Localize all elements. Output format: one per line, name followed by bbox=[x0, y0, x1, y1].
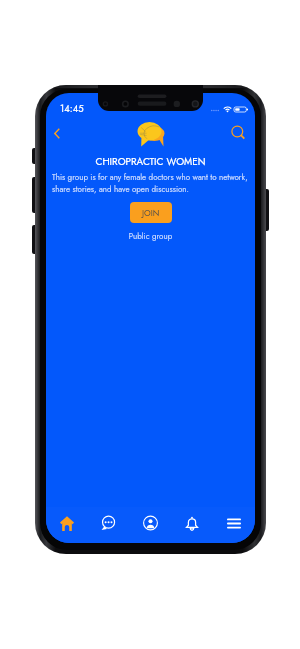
button[interactable]: Home bbox=[46, 507, 87, 539]
staticText: 14:45 bbox=[60, 102, 84, 116]
staticText: Public group bbox=[46, 230, 255, 242]
staticText: This group is for any female doctors who… bbox=[52, 171, 249, 195]
button[interactable]: Search bbox=[226, 119, 250, 143]
button[interactable]: Notifications bbox=[171, 507, 213, 539]
button[interactable]: Messages bbox=[87, 507, 129, 539]
button[interactable]: Profile bbox=[129, 507, 171, 539]
button[interactable]: Menu bbox=[213, 507, 255, 539]
button[interactable]: Back bbox=[46, 121, 67, 145]
staticText: CHIROPRACTIC WOMEN bbox=[46, 154, 255, 168]
button[interactable]: JOIN bbox=[130, 202, 172, 223]
staticText: JOIN bbox=[142, 207, 160, 219]
